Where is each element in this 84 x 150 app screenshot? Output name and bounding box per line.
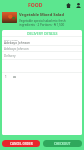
staticText: CHECKOUT: [54, 142, 71, 146]
button[interactable]: CHECKOUT: [43, 140, 82, 147]
staticText: 1: [5, 75, 7, 79]
button[interactable]: Add: [13, 76, 16, 78]
staticText: FULL NAME: [4, 38, 18, 41]
button[interactable]: Profile: [74, 1, 82, 9]
staticText: CANCEL ORDER: [10, 142, 33, 146]
staticText: FOOD: [28, 2, 43, 9]
staticText: Vegetable special salad mix fresh ingred…: [19, 19, 66, 27]
staticText: DELIVERY DETAILS: [27, 31, 58, 36]
staticText: Vegetable Mixed Salad: [19, 12, 64, 17]
staticText: Adebayo Johnson: [4, 41, 31, 45]
button[interactable]: Home: [64, 1, 72, 9]
staticText: Delivery: [4, 54, 16, 58]
button[interactable]: CANCEL ORDER: [2, 140, 40, 147]
staticText: Adebayo Johnson: [4, 47, 29, 51]
